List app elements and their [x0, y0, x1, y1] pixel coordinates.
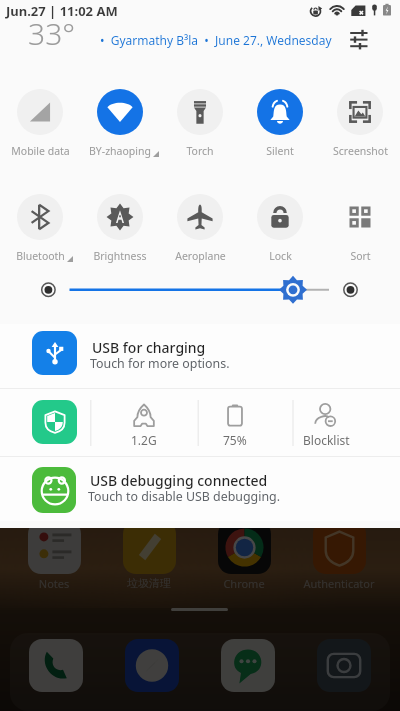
- staticText: Authenticator: [279, 576, 399, 591]
- staticText: Touch to disable USB debugging.: [88, 488, 280, 505]
- staticText: Screenshot: [333, 144, 388, 158]
- button[interactable]: [221, 639, 275, 692]
- staticText: 1.2G: [131, 432, 157, 448]
- button[interactable]: Mobile data: [0, 89, 80, 161]
- staticText: 75%: [223, 432, 247, 448]
- staticText: Blocklist: [303, 432, 350, 448]
- button[interactable]: Torch: [160, 89, 240, 161]
- button[interactable]: Blocklist: [286, 404, 366, 448]
- button[interactable]: Sort: [320, 194, 400, 266]
- staticText: 33°: [28, 13, 76, 54]
- button[interactable]: 75%: [195, 404, 275, 448]
- button[interactable]: [317, 639, 371, 692]
- staticText: • Gyarmathy B³la • June 27., Wednesday: [100, 32, 332, 48]
- staticText: Sort: [350, 249, 371, 263]
- button[interactable]: [123, 521, 176, 574]
- staticText: Chrome: [184, 576, 304, 591]
- button[interactable]: [28, 521, 81, 574]
- button[interactable]: [125, 639, 179, 692]
- staticText: Notes: [0, 576, 114, 591]
- button[interactable]: Security: [32, 400, 77, 444]
- button[interactable]: Screenshot: [320, 89, 400, 161]
- staticText: Aeroplane: [175, 249, 226, 263]
- button[interactable]: BY-zhaoping: [80, 89, 160, 161]
- button[interactable]: [313, 521, 366, 574]
- button[interactable]: 1.2G: [104, 404, 184, 448]
- button[interactable]: Brightness: [80, 194, 160, 266]
- staticText: Jun.27 | 11:02 AM: [6, 2, 118, 20]
- button[interactable]: [218, 521, 271, 574]
- button[interactable]: USB for charging: [0, 324, 400, 388]
- staticText: Brightness: [93, 249, 147, 263]
- button[interactable]: Silent: [240, 89, 320, 161]
- button[interactable]: Lock: [240, 194, 320, 266]
- staticText: Silent: [266, 144, 294, 158]
- button[interactable]: [29, 639, 83, 692]
- button[interactable]: Bluetooth: [0, 194, 80, 266]
- button[interactable]: Brightness: [0, 272, 400, 308]
- staticText: Lock: [269, 249, 292, 263]
- staticText: Touch for more options.: [90, 355, 230, 372]
- button[interactable]: Customise: [349, 30, 369, 50]
- staticText: BY-zhaoping: [89, 144, 151, 158]
- button[interactable]: USB debugging connected: [0, 457, 400, 521]
- staticText: 垃圾清理: [89, 576, 209, 590]
- staticText: Torch: [186, 144, 214, 158]
- staticText: USB for charging: [92, 338, 206, 357]
- button[interactable]: Aeroplane: [160, 194, 240, 266]
- staticText: Mobile data: [11, 144, 70, 158]
- staticText: USB debugging connected: [90, 471, 268, 490]
- staticText: Bluetooth: [16, 249, 65, 263]
